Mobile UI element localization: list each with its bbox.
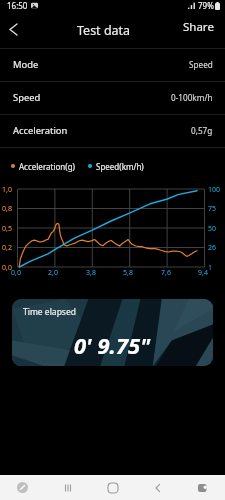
staticText: 2,0 — [48, 268, 58, 278]
staticText: 100 — [208, 185, 221, 195]
staticText: 0,0 — [2, 263, 12, 273]
staticText: Mode — [13, 58, 39, 71]
staticText: 50 — [208, 224, 217, 234]
staticText: 0,5 — [2, 224, 12, 234]
button[interactable]: Keyboard — [190, 475, 215, 500]
staticText: Acceleration(g) — [19, 161, 75, 172]
staticText: 0-100km/h — [171, 92, 213, 103]
staticText: 75 — [208, 204, 217, 214]
staticText: 0,57g — [191, 125, 213, 136]
button[interactable]: Acceleration — [0, 114, 225, 147]
staticText: 0,8 — [2, 204, 12, 214]
staticText: 7,6 — [161, 268, 171, 278]
staticText: 0,2 — [2, 243, 12, 253]
button[interactable]: Mode — [0, 48, 225, 81]
button[interactable]: Speed — [0, 81, 225, 114]
staticText: Test data — [77, 22, 131, 39]
staticText: 3,8 — [86, 268, 96, 278]
button[interactable]: Home — [100, 475, 125, 500]
staticText: 26 — [208, 243, 217, 253]
staticText: 1,0 — [2, 185, 12, 195]
button[interactable]: Time elapsed — [12, 299, 213, 366]
staticText: Share — [183, 19, 214, 35]
staticText: 0,0 — [11, 268, 21, 278]
staticText: 0' 9.75" — [74, 330, 151, 360]
button[interactable]: Accessibility — [10, 475, 35, 500]
staticText: 79% — [198, 0, 214, 11]
staticText: Time elapsed — [23, 306, 76, 318]
staticText: 9,4 — [198, 268, 208, 278]
staticText: 16:50 — [7, 0, 28, 11]
staticText: Speed — [13, 91, 41, 104]
button[interactable]: Back — [145, 475, 170, 500]
staticText: 1 — [208, 263, 213, 273]
button[interactable]: Recents — [55, 475, 80, 500]
staticText: 5,8 — [123, 268, 133, 278]
staticText: Acceleration — [13, 124, 68, 137]
staticText: Speed — [189, 59, 213, 70]
button[interactable]: Back — [1, 17, 25, 41]
staticText: Speed(km/h) — [96, 161, 144, 172]
button[interactable]: Share — [175, 14, 225, 40]
